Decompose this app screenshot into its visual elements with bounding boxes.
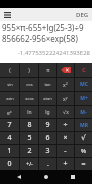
staticText: sin (7, 82, 13, 87)
button[interactable]: = (75, 158, 92, 170)
staticText: 7 (7, 120, 12, 130)
button[interactable]: × (57, 132, 74, 144)
button[interactable]: 1 (0, 145, 19, 157)
staticText: 0 (7, 159, 12, 169)
staticText: 8 (27, 120, 32, 130)
staticText: . (47, 159, 49, 169)
staticText: 2 (27, 146, 32, 156)
button[interactable]: 4 (0, 132, 19, 144)
button[interactable]: asin (0, 92, 19, 105)
staticText: DEG (76, 11, 89, 19)
staticText: x2 (63, 81, 68, 88)
button[interactable]: DEG (76, 11, 89, 19)
staticText: 5 (27, 133, 32, 143)
button[interactable]: M+ (75, 92, 92, 105)
button[interactable]: - (57, 145, 74, 157)
staticText: % (81, 147, 86, 155)
staticText: M- (80, 109, 87, 116)
staticText: C (82, 66, 86, 74)
staticText: - (64, 146, 67, 156)
button[interactable]: atan (39, 92, 56, 105)
button[interactable]: sin (0, 78, 19, 91)
button[interactable]: √ (75, 132, 92, 144)
button[interactable]: 3 (39, 145, 56, 157)
staticText: × (63, 133, 68, 143)
staticText: M+ (80, 95, 88, 102)
staticText: asin (6, 96, 14, 101)
staticText: -1.4775352224241393E28 (2, 49, 90, 57)
staticText: = (81, 159, 86, 169)
staticText: atan (43, 96, 52, 101)
staticText: 4 (7, 133, 12, 143)
button[interactable]: acos (20, 92, 38, 105)
button[interactable]: tan (39, 78, 56, 91)
button[interactable]: Recents (65, 170, 81, 184)
button[interactable]: 6 (39, 132, 56, 144)
staticText: xy (63, 95, 68, 102)
button[interactable]: ln (20, 106, 38, 118)
staticText: √x (63, 109, 69, 116)
button[interactable]: Backspace (57, 63, 74, 77)
staticText: 955×π-655+lg(25-3)÷9 (2, 22, 90, 33)
staticText: lg (45, 109, 50, 116)
button[interactable]: ( (0, 63, 19, 77)
button[interactable]: +/- (20, 158, 38, 170)
button[interactable]: √x (57, 106, 74, 118)
button[interactable]: ÷ (57, 119, 74, 131)
staticText: ln (27, 109, 32, 116)
button[interactable]: Home (38, 170, 54, 184)
staticText: 6 (45, 133, 50, 143)
button[interactable]: MC (75, 78, 92, 91)
staticText: cos (26, 82, 33, 87)
button[interactable]: Menu (2, 9, 13, 20)
staticText: ex (7, 109, 12, 116)
staticText: 9 (45, 120, 50, 130)
button[interactable]: x2 (57, 78, 74, 91)
button[interactable]: 0 (0, 158, 19, 170)
staticText: π (46, 67, 50, 74)
button[interactable]: cos (20, 78, 38, 91)
button[interactable]: 5 (20, 132, 38, 144)
button[interactable]: % (75, 145, 92, 157)
button[interactable]: 9 (39, 119, 56, 131)
button[interactable]: π (39, 63, 56, 77)
staticText: MR (80, 122, 88, 129)
button[interactable]: C (75, 63, 92, 77)
staticText: acos (25, 96, 34, 101)
staticText: tan (44, 82, 51, 87)
staticText: MC (80, 81, 88, 88)
button[interactable]: . (39, 158, 56, 170)
button[interactable]: 2 (20, 145, 38, 157)
button[interactable]: ex (0, 106, 19, 118)
staticText: + (63, 159, 68, 169)
staticText: ) (28, 67, 30, 74)
button[interactable]: + (57, 158, 74, 170)
button[interactable]: lg (39, 106, 56, 118)
staticText: 1 (7, 146, 12, 156)
button[interactable]: xy (57, 92, 74, 105)
button[interactable]: ) (20, 63, 38, 77)
staticText: +/- (26, 161, 33, 168)
staticText: 3 (45, 146, 50, 156)
button[interactable]: 7 (0, 119, 19, 131)
staticText: √ (81, 134, 86, 142)
staticText: 856662-956×exp(58) (2, 33, 90, 44)
button[interactable]: M- (75, 106, 92, 118)
staticText: ÷ (63, 120, 68, 130)
button[interactable]: MR (75, 119, 92, 131)
staticText: ( (9, 67, 11, 74)
button[interactable]: 8 (20, 119, 38, 131)
button[interactable]: Back (11, 170, 27, 184)
